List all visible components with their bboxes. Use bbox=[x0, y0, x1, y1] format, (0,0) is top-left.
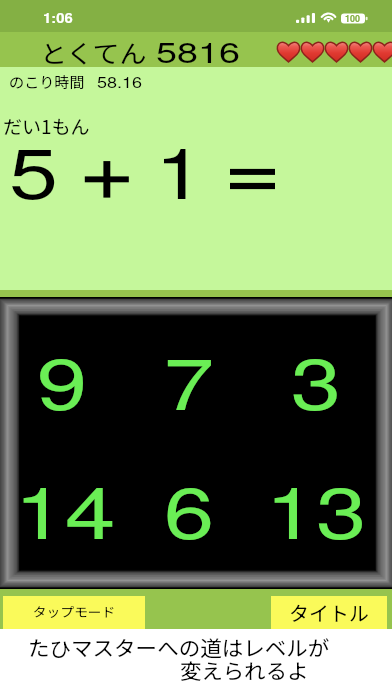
staticText: タップモード bbox=[33, 602, 116, 621]
staticText: 3 bbox=[291, 327, 342, 430]
button[interactable]: 7 bbox=[130, 319, 248, 437]
button[interactable]: 14 bbox=[6, 448, 124, 566]
staticText: のこり時間 bbox=[9, 71, 86, 93]
staticText: 5 bbox=[9, 119, 58, 219]
staticText: 5816 bbox=[156, 30, 240, 72]
staticText: だい1もん bbox=[3, 112, 90, 140]
button[interactable]: 9 bbox=[3, 319, 121, 437]
button[interactable]: 3 bbox=[257, 319, 375, 437]
button[interactable]: タップモード bbox=[3, 596, 145, 629]
staticText: 1 bbox=[155, 119, 204, 219]
staticText: 1:06 bbox=[43, 8, 74, 27]
staticText: タイトル bbox=[289, 598, 369, 627]
button[interactable]: タイトル bbox=[271, 596, 387, 629]
staticText: 6 bbox=[164, 456, 215, 559]
staticText: 100 bbox=[345, 12, 361, 25]
staticText: 7 bbox=[164, 327, 215, 430]
staticText: 13 bbox=[265, 456, 368, 559]
staticText: 9 bbox=[37, 327, 88, 430]
staticText: 14 bbox=[14, 456, 117, 559]
staticText: とくてん bbox=[40, 34, 147, 70]
button[interactable]: 6 bbox=[130, 448, 248, 566]
staticText: 58.16 bbox=[97, 71, 143, 92]
button[interactable]: 13 bbox=[257, 448, 375, 566]
staticText: 変えられるよ bbox=[180, 655, 308, 685]
staticText: たひマスターへの道はレベルが bbox=[28, 632, 329, 662]
